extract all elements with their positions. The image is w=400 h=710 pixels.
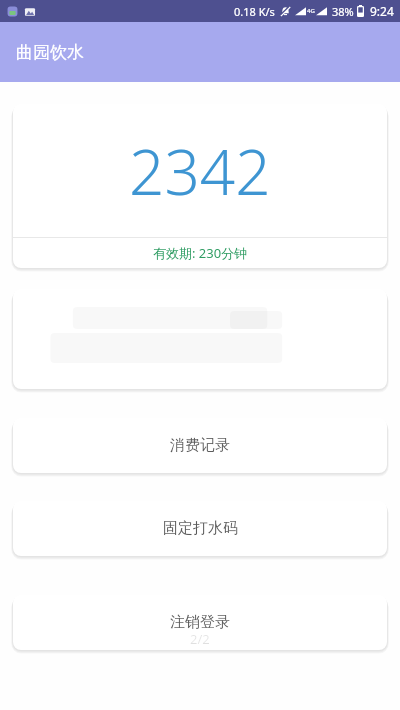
- staticText: 曲园饮水: [16, 42, 84, 63]
- staticText: 有效期: 230分钟: [153, 244, 248, 262]
- staticText: 固定打水码: [163, 519, 238, 538]
- button[interactable]: 注销登录: [13, 595, 387, 650]
- button[interactable]: 固定打水码: [13, 501, 387, 556]
- staticText: 4G: [307, 7, 315, 15]
- staticText: 0.18 K/s: [234, 4, 275, 19]
- staticText: 38%: [332, 4, 354, 19]
- staticText: 9:24: [370, 3, 394, 19]
- staticText: 2342: [129, 129, 271, 213]
- button[interactable]: 消费记录: [13, 418, 387, 473]
- staticText: 消费记录: [170, 436, 230, 455]
- staticText: 注销登录: [170, 613, 230, 632]
- staticText: 2/2: [190, 630, 210, 648]
